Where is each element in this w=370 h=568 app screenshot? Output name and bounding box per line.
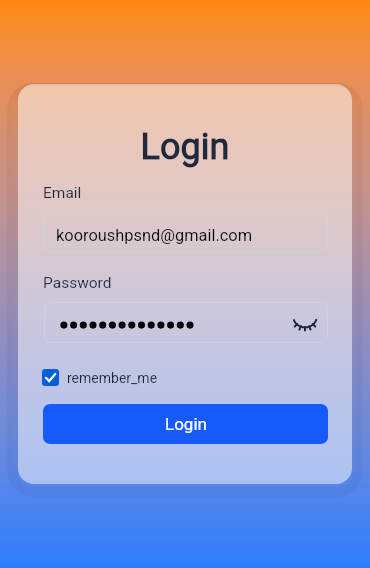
staticText: kooroushpsnd@gmail.com bbox=[56, 226, 253, 245]
button[interactable]: Login bbox=[43, 404, 328, 444]
staticText: remember_me bbox=[67, 370, 158, 386]
staticText: Password bbox=[43, 274, 112, 292]
staticText: Email bbox=[43, 184, 82, 202]
button[interactable]: kooroushpsnd@gmail.com bbox=[44, 212, 328, 253]
staticText: Login bbox=[18, 126, 352, 168]
button[interactable]: Toggle password visibility bbox=[292, 310, 318, 336]
staticText: Login bbox=[165, 414, 207, 434]
button[interactable]: remember_me bbox=[42, 369, 158, 386]
button[interactable]: Toggle password visibility bbox=[44, 302, 328, 343]
